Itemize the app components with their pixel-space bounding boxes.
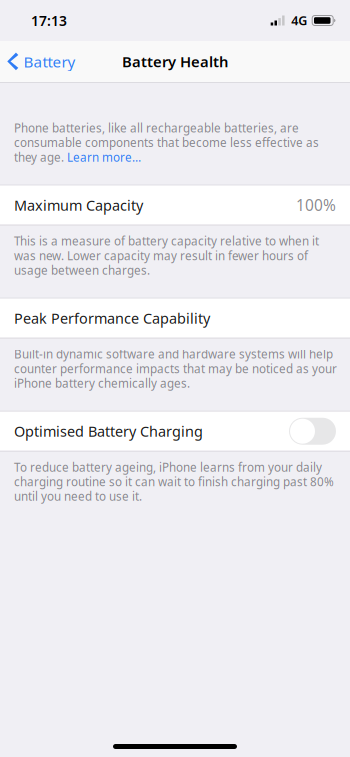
staticText: 100% [296, 194, 336, 216]
staticText: until you need to use it. [14, 488, 142, 504]
staticText: consumable components that become less e… [14, 135, 319, 150]
staticText: they age. [14, 149, 67, 165]
staticText: Battery Health [122, 51, 228, 72]
button[interactable]: Battery [0, 41, 85, 82]
staticText: Optimised Battery Charging [14, 421, 203, 441]
staticText: usage between charges. [14, 262, 150, 278]
staticText: Peak Performance Capability [14, 308, 210, 328]
staticText: iPhone battery chemically ages. [14, 375, 190, 391]
staticText: Maximum Capacity [14, 195, 143, 215]
staticText: counter performance impacts that may be … [14, 361, 337, 377]
button[interactable]: Learn more… [67, 149, 141, 165]
staticText: was new. Lower capacity may result in fe… [14, 248, 308, 264]
staticText: Battery [23, 51, 75, 72]
button[interactable]: Peak Performance Capability [0, 298, 350, 339]
staticText: Learn more… [67, 149, 141, 165]
button[interactable]: Optimised Battery Charging [289, 418, 336, 445]
staticText: Phone batteries, like all rechargeable b… [14, 120, 299, 136]
staticText: 4G [291, 12, 307, 29]
staticText: charging routine so it can wait to finis… [14, 474, 334, 490]
staticText: Built-in dynamic software and hardware s… [14, 346, 333, 362]
staticText: To reduce battery ageing, iPhone learns … [14, 459, 322, 475]
staticText: 17:13 [31, 11, 67, 30]
staticText: This is a measure of battery capacity re… [14, 233, 319, 249]
